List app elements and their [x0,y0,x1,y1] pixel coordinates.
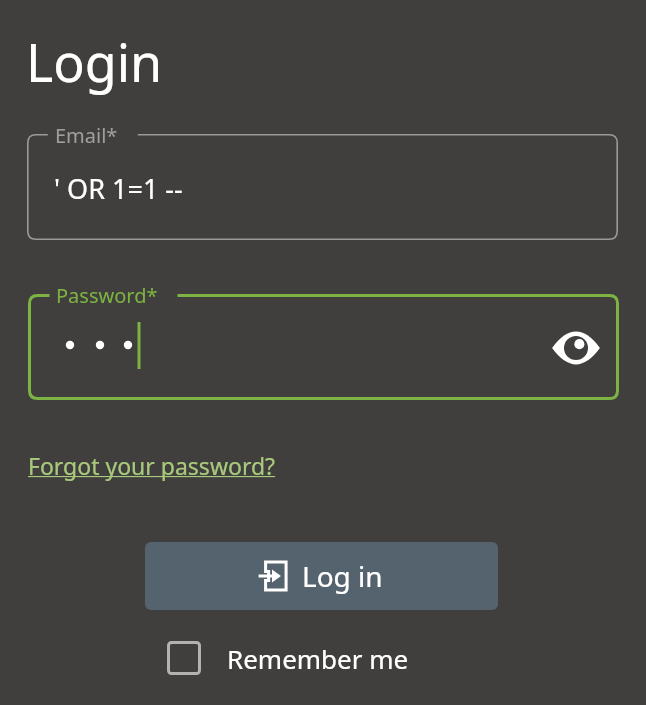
staticText: Email* [55,122,118,149]
button[interactable]: Log in [145,542,498,610]
staticText: Forgot your password? [28,450,276,481]
staticText: Login [26,26,163,97]
button[interactable]: Forgot your password? [26,446,278,485]
button[interactable]: Show password [546,318,606,378]
staticText: ' OR 1=1 -- [54,170,183,207]
button[interactable]: Remember me [160,634,425,682]
staticText: Password* [56,282,158,309]
button[interactable]: Password [28,294,619,400]
button[interactable]: Email [27,134,618,240]
staticText: Remember me [227,641,409,676]
staticText: Log in [302,557,383,595]
